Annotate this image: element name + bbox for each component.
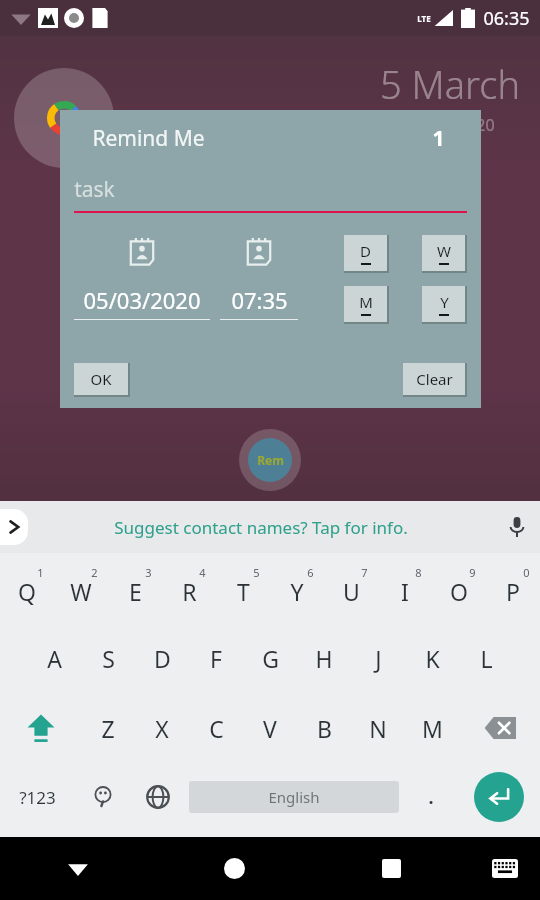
button[interactable]: Suggest contact names? Tap for info. (28, 501, 494, 553)
staticText: H (315, 643, 333, 674)
button[interactable]: Q (0, 553, 54, 623)
button[interactable]: M (405, 693, 459, 763)
button[interactable]: E (108, 553, 162, 623)
staticText: R (182, 576, 197, 607)
staticText: Q (18, 576, 36, 607)
button[interactable]: Hide keyboard (0, 837, 156, 900)
staticText: T (237, 576, 250, 607)
staticText: L (480, 643, 493, 674)
button[interactable]: A (27, 623, 81, 693)
button[interactable]: Emoji (75, 763, 130, 831)
button[interactable]: Voice input (494, 501, 540, 553)
staticText: 07:35 (231, 285, 288, 315)
staticText: P (506, 576, 520, 607)
button[interactable]: Recent apps (313, 837, 470, 900)
button[interactable]: Pick date (125, 235, 159, 269)
button[interactable]: B (297, 693, 351, 763)
button[interactable]: H (297, 623, 351, 693)
button[interactable]: I (378, 553, 432, 623)
staticText: M (422, 713, 443, 744)
button[interactable]: C (189, 693, 243, 763)
staticText: Y (440, 292, 449, 312)
staticText: W (437, 241, 451, 261)
staticText: I (401, 576, 409, 607)
staticText: K (425, 643, 440, 674)
button[interactable]: Change language (130, 763, 185, 831)
staticText: 1 (37, 565, 44, 580)
button[interactable]: Switch keyboard (470, 837, 540, 900)
button[interactable]: Google search (14, 68, 114, 168)
button[interactable]: Rem app (248, 438, 292, 482)
staticText: D (154, 643, 171, 674)
button[interactable]: ?123 (0, 763, 75, 831)
button[interactable]: Y (270, 553, 324, 623)
button[interactable]: Clear (403, 363, 465, 395)
button[interactable]: English (189, 781, 399, 813)
staticText: Rem (257, 452, 284, 468)
button[interactable]: Backspace (459, 693, 540, 763)
button[interactable]: F (189, 623, 243, 693)
staticText: 5 (253, 565, 260, 580)
staticText: 2 (91, 565, 98, 580)
button[interactable]: P (486, 553, 540, 623)
staticText: X (155, 713, 169, 744)
staticText: E (129, 576, 142, 607)
staticText: C (209, 713, 224, 744)
button[interactable]: W (54, 553, 108, 623)
staticText: Suggest contact names? Tap for info. (114, 516, 408, 539)
button[interactable]: Shift (0, 693, 81, 763)
staticText: 05/03/2020 (83, 285, 201, 315)
staticText: 4 (199, 565, 206, 580)
button[interactable]: . (403, 763, 458, 831)
staticText: A (47, 643, 62, 674)
button[interactable]: Z (81, 693, 135, 763)
staticText: S (102, 643, 115, 674)
staticText: Clear (416, 369, 453, 389)
staticText: 0 (523, 565, 530, 580)
staticText: 1 (432, 124, 445, 153)
staticText: 9 (469, 565, 476, 580)
staticText: Y (290, 576, 304, 607)
staticText: task (74, 175, 115, 204)
button[interactable]: D (344, 235, 387, 271)
staticText: O (450, 576, 468, 607)
button[interactable]: N (351, 693, 405, 763)
staticText: Z (101, 713, 115, 744)
staticText: LTE (417, 13, 431, 24)
button[interactable]: D (135, 623, 189, 693)
button[interactable]: L (459, 623, 513, 693)
button[interactable]: OK (74, 363, 128, 395)
button[interactable]: Y (422, 286, 465, 322)
staticText: M (359, 292, 373, 312)
staticText: F (210, 643, 222, 674)
staticText: 8 (415, 565, 422, 580)
staticText: 6 (307, 565, 314, 580)
button[interactable]: Enter (474, 772, 524, 822)
staticText: B (317, 713, 332, 744)
button[interactable]: T (216, 553, 270, 623)
button[interactable]: U (324, 553, 378, 623)
button[interactable]: Home (156, 837, 313, 900)
button[interactable]: K (405, 623, 459, 693)
staticText: G (262, 643, 279, 674)
button[interactable]: M (344, 286, 387, 322)
staticText: 3 (145, 565, 152, 580)
staticText: D (360, 241, 371, 261)
button[interactable]: S (81, 623, 135, 693)
button[interactable]: V (243, 693, 297, 763)
staticText: OK (90, 369, 112, 389)
button[interactable]: O (432, 553, 486, 623)
button[interactable]: X (135, 693, 189, 763)
staticText: 06:35 (483, 6, 530, 31)
button[interactable]: R (162, 553, 216, 623)
staticText: English (268, 787, 320, 807)
button[interactable]: J (351, 623, 405, 693)
staticText: Thursday, 2020 (380, 114, 495, 136)
staticText: V (263, 713, 277, 744)
button[interactable]: W (422, 235, 465, 271)
staticText: N (369, 713, 387, 744)
button[interactable]: G (243, 623, 297, 693)
button[interactable]: Expand suggestions (0, 509, 28, 545)
button[interactable]: Pick time (242, 235, 276, 269)
staticText: . (428, 785, 434, 810)
